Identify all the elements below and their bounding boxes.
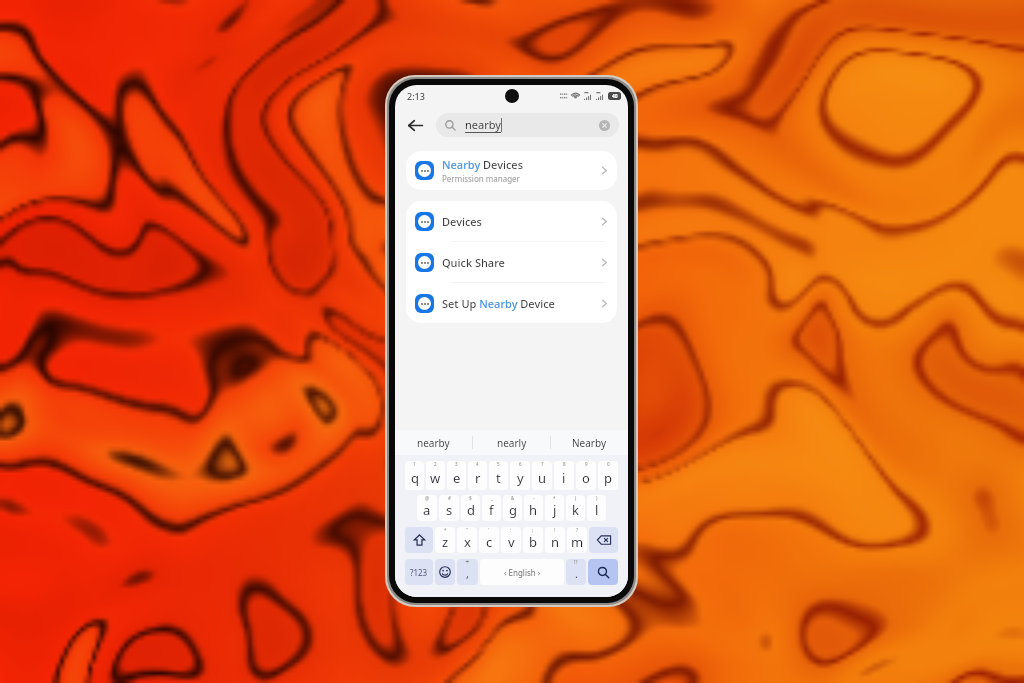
staticText: $ <box>469 495 472 501</box>
staticText: Quick Share <box>442 255 505 270</box>
button[interactable]: Search <box>588 559 618 585</box>
button[interactable]: : <box>501 527 521 553</box>
button[interactable]: Set Up Nearby Device <box>406 283 617 323</box>
button[interactable]: $ <box>461 495 480 521</box>
staticText: Nearby <box>572 436 607 450</box>
button[interactable]: 0 <box>598 461 618 490</box>
staticText: b <box>529 533 537 551</box>
staticText: m <box>571 533 584 551</box>
button[interactable]: Nearby <box>551 430 628 455</box>
staticText: ; <box>532 527 534 533</box>
button[interactable]: ; <box>523 527 543 553</box>
staticText: i <box>562 469 566 487</box>
button[interactable]: 4 <box>468 461 487 490</box>
button[interactable]: Backspace <box>589 527 618 553</box>
staticText: nearby <box>417 436 450 450</box>
staticText: 5 <box>497 461 500 467</box>
button[interactable]: " <box>457 527 477 553</box>
staticText: 2 <box>434 461 437 467</box>
button[interactable]: ?123 <box>405 559 433 585</box>
staticText: k <box>572 501 579 519</box>
staticText: !? <box>574 559 578 566</box>
button[interactable]: Quick Share <box>406 242 617 282</box>
staticText: j <box>553 501 557 519</box>
staticText: 7 <box>541 461 544 467</box>
button[interactable]: 2 <box>426 461 445 490</box>
staticText: * <box>553 495 556 501</box>
button[interactable]: _ <box>482 495 501 521</box>
staticText: 40 <box>612 93 618 100</box>
button[interactable]: 6 <box>510 461 530 490</box>
button[interactable]: # <box>439 495 459 521</box>
staticText: f <box>489 501 494 519</box>
staticText: x <box>464 533 471 551</box>
staticText: nearly <box>497 436 527 450</box>
button[interactable]: nearby <box>395 430 472 455</box>
staticText: l <box>595 501 599 519</box>
button[interactable]: 5 <box>489 461 508 490</box>
staticText: 1 <box>413 461 416 467</box>
staticText: " <box>466 527 468 533</box>
button[interactable]: @ <box>417 495 437 521</box>
staticText: ) <box>596 495 598 501</box>
button[interactable]: * <box>435 527 455 553</box>
staticText: a <box>423 501 431 519</box>
staticText: r <box>475 469 481 487</box>
staticText: v <box>508 533 515 551</box>
button[interactable]: 7 <box>532 461 552 490</box>
button[interactable]: 1 <box>405 461 424 490</box>
button[interactable]: - <box>524 495 543 521</box>
button[interactable]: ! <box>545 527 565 553</box>
staticText: # <box>448 495 451 501</box>
staticText: w <box>430 469 441 487</box>
staticText: y <box>517 469 524 487</box>
button[interactable]: ? <box>567 527 587 553</box>
staticText: - <box>533 495 535 501</box>
button[interactable]: Clear search <box>599 120 610 131</box>
staticText: _ <box>491 495 493 501</box>
staticText: 6 <box>519 461 522 467</box>
staticText: s <box>446 501 453 519</box>
staticText: 3 <box>455 461 458 467</box>
button[interactable]: Shift <box>405 527 433 553</box>
button[interactable]: ‹ English › <box>480 559 564 585</box>
button[interactable]: ) <box>587 495 606 521</box>
staticText: & <box>511 495 515 501</box>
staticText: u <box>538 469 547 487</box>
button[interactable]: ( <box>566 495 585 521</box>
button[interactable]: 8 <box>554 461 574 490</box>
staticText: * <box>444 527 447 533</box>
staticText: ? <box>576 527 578 533</box>
button[interactable]: 3 <box>447 461 466 490</box>
staticText: ?123 <box>410 567 428 578</box>
staticText: ‹ English › <box>504 567 541 578</box>
staticText: p <box>604 469 612 487</box>
staticText: z <box>442 533 449 551</box>
staticText: h <box>529 501 538 519</box>
button[interactable]: nearby <box>436 113 619 137</box>
button[interactable]: ' <box>479 527 499 553</box>
button[interactable]: nearly <box>473 430 550 455</box>
staticText: g <box>509 501 517 519</box>
button[interactable]: 9 <box>576 461 596 490</box>
button[interactable]: Back <box>395 108 436 142</box>
staticText: 2:13 <box>407 90 425 102</box>
button[interactable]: Nearby Devices <box>406 151 617 190</box>
staticText: t <box>496 469 501 487</box>
button[interactable]: Devices <box>406 201 617 241</box>
button[interactable]: !? <box>566 559 586 585</box>
staticText: 9 <box>585 461 588 467</box>
staticText: o <box>582 469 590 487</box>
staticText: ' <box>488 527 490 533</box>
staticText: e <box>453 469 461 487</box>
staticText: 8 <box>563 461 566 467</box>
button[interactable]: Emoji <box>435 559 455 585</box>
staticText: ! <box>554 527 556 533</box>
button[interactable]: & <box>503 495 522 521</box>
button[interactable]: * <box>545 495 564 521</box>
staticText: d <box>467 501 475 519</box>
staticText: Devices <box>442 214 482 229</box>
staticText: , <box>466 566 469 581</box>
staticText: Permission manager <box>442 173 520 184</box>
button[interactable]: ☂ <box>457 559 478 585</box>
